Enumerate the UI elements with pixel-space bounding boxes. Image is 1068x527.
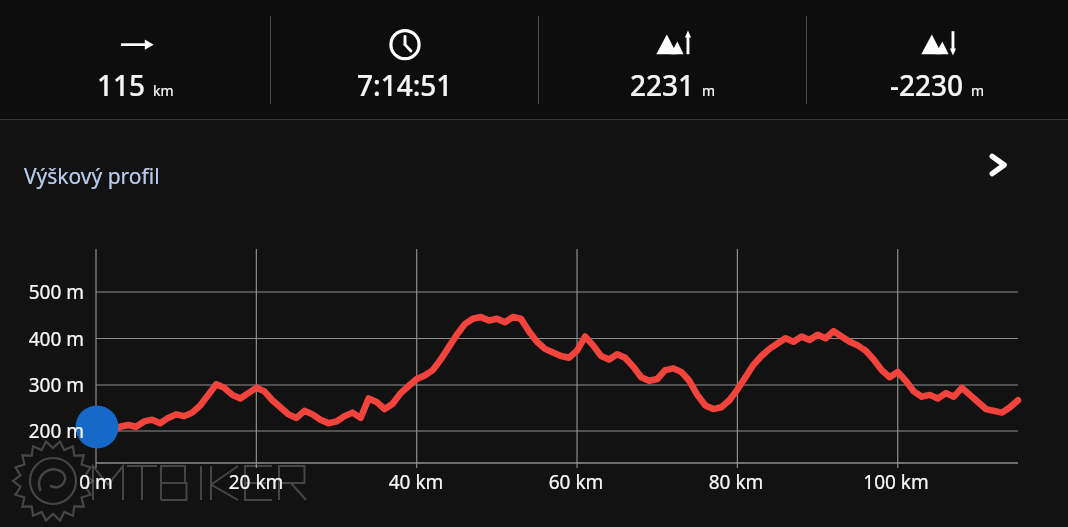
staticText: 0 m [36,469,156,495]
staticText: 2231 [630,66,695,104]
staticText: 60 km [516,469,636,495]
staticText: -2230 [890,66,964,104]
other: Total descent [916,28,960,60]
button[interactable]: Total ascent [539,0,806,119]
staticText: 20 km [196,469,316,495]
other: Total ascent [651,28,695,60]
staticText: 200 m [0,418,84,444]
staticText: 80 km [676,469,796,495]
staticText: m [971,81,985,100]
button[interactable]: Výškový profil [0,120,1068,230]
other: Open elevation profile [980,147,1016,183]
staticText: 100 km [836,469,956,495]
other: Duration [383,28,427,60]
staticText: km [153,81,174,100]
other: Distance [114,28,158,60]
staticText: m [702,81,716,100]
button[interactable]: Total descent [807,0,1068,119]
button[interactable]: Duration [271,0,538,119]
staticText: 300 m [0,372,84,398]
staticText: 500 m [0,279,84,305]
staticText: 115 [97,66,146,104]
staticText: 40 km [356,469,476,495]
button[interactable]: Distance [0,0,270,119]
staticText: Výškový profil [24,162,160,191]
staticText: 400 m [0,326,84,352]
staticText: 7:14:51 [357,66,453,104]
